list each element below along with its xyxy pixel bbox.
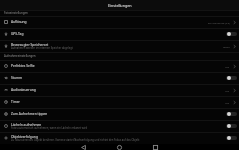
staticText: Objektverfolgung — [11, 135, 38, 139]
staticText: Aus — [225, 89, 230, 92]
staticText: Timer — [11, 100, 20, 104]
staticText: Bevorzugter Speicherort — [11, 43, 49, 47]
button[interactable]: Audiosteuerung — [0, 84, 239, 96]
staticText: Fotoeinstellungen — [4, 11, 28, 15]
staticText: Einstellungen — [108, 3, 132, 8]
button[interactable]: Stumm — [0, 72, 239, 84]
staticText: Intern — [223, 45, 230, 48]
button[interactable]: Home — [114, 144, 125, 150]
button[interactable]: Recents — [150, 144, 161, 150]
staticText: Aufnahmen werden im internen Speicher ab… — [11, 46, 73, 50]
staticText: Aus — [225, 65, 230, 68]
staticText: Perfektes Selfie — [11, 64, 35, 68]
button[interactable]: Timer — [0, 96, 239, 108]
staticText: Audiosteuerung — [11, 88, 36, 92]
staticText: Lächeln aufnehmen — [11, 123, 42, 127]
staticText: Fotos automatisch aufnehmen, wenn ein Lä… — [11, 126, 88, 130]
button[interactable]: Bevorzugter Speicherort — [0, 40, 239, 52]
staticText: Aufnahmeeinstellungen — [4, 54, 36, 58]
staticText: Zum Aufnehmen tippen — [11, 112, 48, 116]
button[interactable]: Auflösung — [0, 16, 239, 28]
button[interactable]: Perfektes Selfie — [0, 60, 239, 72]
staticText: 8M 3264x2448 (4:3) — [208, 21, 230, 24]
staticText: Aus — [225, 101, 230, 104]
button[interactable]: Lächeln aufnehmen — [0, 120, 239, 132]
button[interactable]: Objektverfolgung — [0, 132, 239, 144]
button[interactable]: Back — [78, 144, 89, 150]
staticText: Stumm — [11, 76, 23, 80]
staticText: Zu fokussierendes Objekt berühren. Kamer… — [11, 138, 140, 142]
staticText: GPS-Tag — [11, 32, 24, 36]
button[interactable]: GPS-Tag — [0, 28, 239, 40]
staticText: Auflösung — [11, 20, 27, 24]
button[interactable]: Zum Aufnehmen tippen — [0, 108, 239, 120]
